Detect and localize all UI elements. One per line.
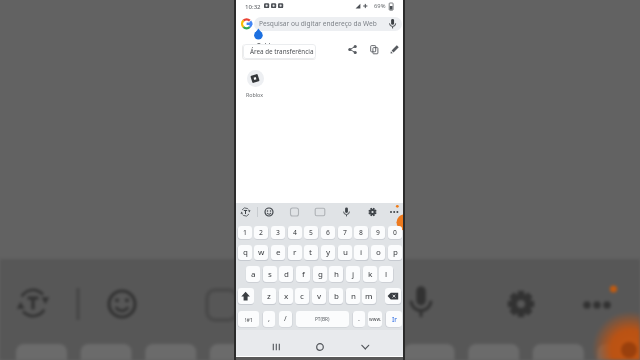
button[interactable]: c — [295, 288, 309, 304]
staticText: i — [360, 247, 363, 258]
button[interactable]: w — [254, 245, 268, 260]
button[interactable]: i — [354, 245, 368, 260]
button[interactable]: n — [346, 288, 360, 304]
staticText: h — [334, 269, 339, 280]
button[interactable]: r — [288, 245, 302, 260]
button[interactable]: g — [313, 266, 327, 282]
button[interactable] — [238, 288, 254, 304]
staticText: l — [385, 269, 388, 280]
button[interactable]: Roblox — [240, 90, 270, 98]
staticText: 5 — [309, 228, 313, 237]
staticText: Roblox — [246, 91, 264, 98]
button[interactable]: e — [271, 245, 285, 260]
button[interactable]: d — [279, 266, 293, 282]
staticText: 69% — [374, 2, 386, 10]
button[interactable]: y — [321, 245, 335, 260]
staticText: 9 — [376, 228, 380, 237]
button[interactable]: 2 — [254, 226, 268, 239]
staticText: PT(BR) — [315, 316, 330, 322]
button[interactable]: o — [371, 245, 385, 260]
button[interactable]: h — [329, 266, 343, 282]
staticText: j — [352, 269, 355, 280]
button[interactable]: / — [279, 311, 292, 327]
button[interactable]: j — [346, 266, 360, 282]
staticText: a — [251, 269, 256, 280]
button[interactable]: 4 — [288, 226, 302, 239]
staticText: m — [365, 291, 373, 302]
staticText: o — [376, 247, 381, 258]
button[interactable]: t — [304, 245, 318, 260]
staticText: s — [268, 269, 272, 280]
button[interactable]: l — [379, 266, 393, 282]
staticText: 1 — [243, 228, 247, 237]
button[interactable]: s — [263, 266, 277, 282]
button[interactable] — [243, 44, 316, 59]
button[interactable]: 7 — [338, 226, 352, 239]
staticText: p — [393, 247, 398, 258]
staticText: , — [268, 314, 270, 324]
button[interactable]: 9 — [371, 226, 385, 239]
button[interactable] — [247, 70, 264, 87]
button[interactable] — [385, 288, 401, 304]
staticText: c — [300, 291, 304, 302]
staticText: x — [284, 291, 289, 302]
staticText: Área de transferência — [250, 47, 314, 55]
button[interactable]: PT(BR) — [296, 311, 349, 327]
staticText: 4 — [293, 228, 297, 237]
button[interactable]: 6 — [321, 226, 335, 239]
staticText: 8 — [359, 228, 363, 237]
button[interactable]: www. — [368, 311, 382, 327]
staticText: u — [343, 247, 348, 258]
staticText: / — [284, 314, 287, 324]
staticText: 0 — [393, 228, 397, 237]
button[interactable] — [254, 17, 402, 31]
staticText: 7 — [343, 228, 347, 237]
staticText: k — [368, 269, 373, 280]
staticText: q — [243, 247, 248, 258]
staticText: 3 — [276, 228, 280, 237]
staticText: f — [302, 269, 305, 280]
button[interactable]: 3 — [271, 226, 285, 239]
button[interactable]: a — [246, 266, 260, 282]
staticText: 2 — [259, 228, 263, 237]
button[interactable]: , — [263, 311, 275, 327]
button[interactable]: u — [338, 245, 352, 260]
staticText: w — [258, 247, 265, 258]
staticText: n — [351, 291, 356, 302]
staticText: y — [326, 247, 331, 258]
staticText: . — [358, 314, 360, 324]
button[interactable]: z — [262, 288, 276, 304]
button[interactable]: q — [238, 245, 252, 260]
staticText: Roblox — [257, 41, 278, 50]
button[interactable]: k — [363, 266, 377, 282]
staticText: b — [334, 291, 339, 302]
button[interactable]: Ir — [386, 311, 402, 327]
button[interactable]: 0 — [388, 226, 402, 239]
staticText: e — [276, 247, 281, 258]
staticText: Ir — [392, 315, 397, 324]
staticText: 6 — [326, 228, 330, 237]
staticText: 10:32 — [245, 2, 261, 10]
button[interactable]: 8 — [354, 226, 368, 239]
button[interactable]: 5 — [304, 226, 318, 239]
staticText: v — [317, 291, 322, 302]
button[interactable]: m — [362, 288, 376, 304]
staticText: z — [267, 291, 271, 302]
staticText: Pesquisar ou digitar endereço da Web — [259, 19, 377, 28]
staticText: www. — [369, 316, 382, 322]
staticText: !#1 — [245, 316, 253, 323]
button[interactable]: . — [353, 311, 365, 327]
staticText: t — [309, 247, 313, 258]
button[interactable]: p — [388, 245, 402, 260]
staticText: r — [293, 247, 297, 258]
button[interactable]: 1 — [238, 226, 252, 239]
button[interactable]: x — [279, 288, 293, 304]
button[interactable]: !#1 — [238, 311, 259, 327]
staticText: d — [284, 269, 289, 280]
button[interactable]: v — [312, 288, 326, 304]
button[interactable]: f — [296, 266, 310, 282]
staticText: g — [318, 269, 323, 280]
button[interactable]: b — [329, 288, 343, 304]
